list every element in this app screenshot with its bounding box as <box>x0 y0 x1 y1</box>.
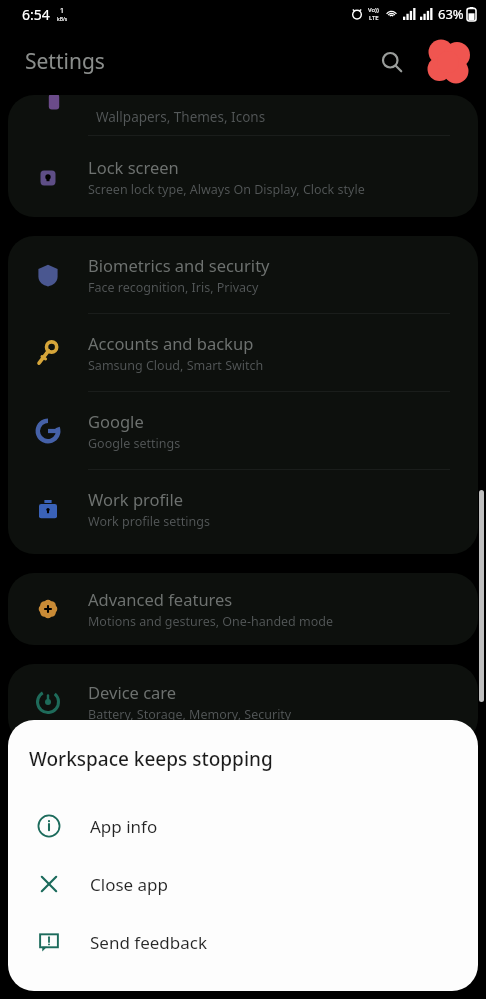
button[interactable]: Wallpapers, Themes, Icons <box>8 95 478 135</box>
staticText: Work profile settings <box>88 513 210 530</box>
staticText: kB/s <box>57 16 68 23</box>
button[interactable]: Accounts and backup <box>8 314 478 391</box>
staticText: Vo)) <box>368 6 379 14</box>
staticText: Screen lock type, Always On Display, Clo… <box>88 181 365 198</box>
staticText: Face recognition, Iris, Privacy <box>88 279 259 296</box>
staticText: Google settings <box>88 435 181 452</box>
button[interactable]: Send feedback <box>8 913 478 971</box>
staticText: Advanced features <box>88 588 233 610</box>
staticText: 1 <box>60 6 65 16</box>
button[interactable]: Work profile <box>8 470 478 547</box>
staticText: Biometrics and security <box>88 254 270 276</box>
button[interactable]: Account <box>422 36 474 88</box>
button[interactable]: Device care <box>8 664 478 740</box>
staticText: 6:54 <box>22 5 50 24</box>
button[interactable]: Google <box>8 392 478 469</box>
button[interactable]: Lock screen <box>8 136 478 217</box>
button[interactable]: Search <box>370 40 414 84</box>
staticText: Motions and gestures, One-handed mode <box>88 613 334 630</box>
button[interactable]: Biometrics and security <box>8 236 478 313</box>
staticText: Settings <box>25 47 105 76</box>
staticText: Samsung Cloud, Smart Switch <box>88 357 264 374</box>
button[interactable]: Close app <box>8 855 478 913</box>
button[interactable]: Advanced features <box>8 573 478 645</box>
staticText: Lock screen <box>88 156 179 178</box>
staticText: LTE <box>369 14 379 22</box>
staticText: 63% <box>438 5 464 23</box>
staticText: Workspace keeps stopping <box>29 746 273 772</box>
staticText: Wallpapers, Themes, Icons <box>96 108 266 126</box>
staticText: Device care <box>88 681 177 703</box>
staticText: Send feedback <box>90 931 208 954</box>
staticText: App info <box>90 815 158 838</box>
staticText: Close app <box>90 873 169 896</box>
staticText: Accounts and backup <box>88 332 254 354</box>
button[interactable]: App info <box>8 797 478 855</box>
staticText: Battery, Storage, Memory, Security <box>88 706 292 723</box>
staticText: Work profile <box>88 488 184 510</box>
staticText: Google <box>88 410 144 432</box>
